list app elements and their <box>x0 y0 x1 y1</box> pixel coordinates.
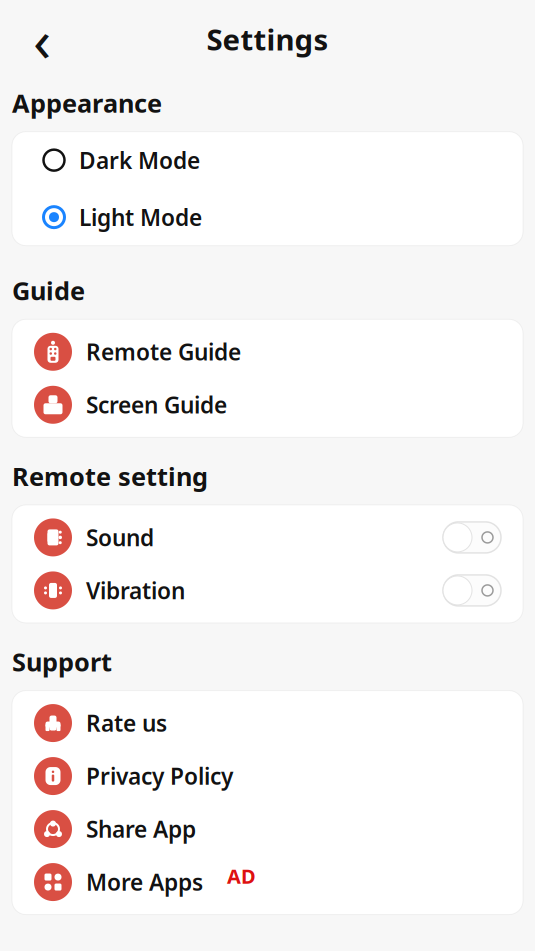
staticText: ‹ <box>33 0 51 78</box>
staticText: More Apps <box>86 867 203 897</box>
button[interactable]: Light Mode <box>12 189 523 246</box>
staticText: Privacy Policy <box>86 761 233 791</box>
staticText: Screen Guide <box>86 390 227 420</box>
staticText: Dark Mode <box>79 145 200 175</box>
staticText: Support <box>12 645 112 678</box>
button[interactable]: Screen Guide <box>12 378 523 431</box>
staticText: Light Mode <box>79 202 202 232</box>
button[interactable]: Share App <box>12 803 523 856</box>
button[interactable]: Vibration <box>12 564 523 617</box>
button[interactable]: Privacy Policy <box>12 750 523 803</box>
button[interactable]: Dark Mode <box>12 132 523 189</box>
staticText: Appearance <box>12 86 162 120</box>
staticText: Share App <box>86 814 196 844</box>
button[interactable]: Back <box>20 17 64 61</box>
staticText: Remote Guide <box>86 337 241 367</box>
staticText: AD <box>227 863 256 889</box>
button[interactable]: More Apps <box>12 856 523 909</box>
staticText: Vibration <box>86 575 185 605</box>
staticText: Guide <box>12 274 85 307</box>
button[interactable]: Rate us <box>12 697 523 750</box>
button[interactable]: Sound <box>12 511 523 564</box>
staticText: Settings <box>206 19 328 58</box>
staticText: Remote setting <box>12 459 208 493</box>
button[interactable]: Remote Guide <box>12 325 523 378</box>
staticText: Rate us <box>86 708 167 738</box>
staticText: Sound <box>86 522 154 552</box>
